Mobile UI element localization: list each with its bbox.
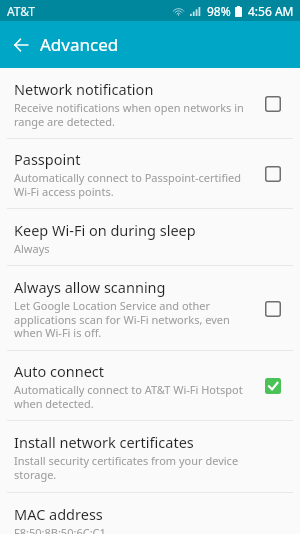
staticText: F8:50:8B:50:6C:C1	[14, 525, 106, 534]
staticText: Receive notifications when open networks…	[14, 100, 248, 129]
staticText: Keep Wi-Fi on during sleep	[14, 220, 196, 240]
staticText: Automatically connect to Passpoint-certi…	[14, 170, 248, 199]
staticText: Install security certificates from your …	[14, 453, 248, 482]
button[interactable]: Passpoint	[0, 139, 300, 209]
staticText: Advanced	[40, 33, 119, 56]
button[interactable]: Unchecked	[262, 287, 300, 331]
staticText: Always allow scanning	[14, 277, 166, 297]
staticText: Passpoint	[14, 149, 81, 169]
button[interactable]: Unchecked	[262, 82, 300, 126]
button[interactable]: MAC address	[0, 484, 300, 534]
staticText: Let Google Location Service and other ap…	[14, 298, 248, 340]
button[interactable]: Auto connect	[0, 351, 300, 421]
button[interactable]: Network notification	[0, 68, 300, 139]
button[interactable]: Install network certificates	[0, 421, 300, 493]
button[interactable]: Navigate up	[3, 27, 39, 63]
staticText: Automatically connect to AT&T Wi-Fi Hots…	[14, 382, 248, 411]
staticText: Always	[14, 241, 50, 256]
staticText: 98%	[207, 3, 231, 19]
staticText: Install network certificates	[14, 432, 194, 452]
staticText: Network notification	[14, 79, 154, 99]
staticText: AT&T	[7, 3, 35, 19]
button[interactable]: Always allow scanning	[0, 266, 300, 351]
staticText: 4:56 AM	[248, 3, 294, 19]
button[interactable]: Checked	[262, 364, 300, 408]
button[interactable]: Keep Wi-Fi on during sleep	[0, 209, 300, 266]
staticText: MAC address	[14, 504, 103, 524]
button[interactable]: Unchecked	[262, 152, 300, 196]
staticText: Auto connect	[14, 361, 105, 381]
